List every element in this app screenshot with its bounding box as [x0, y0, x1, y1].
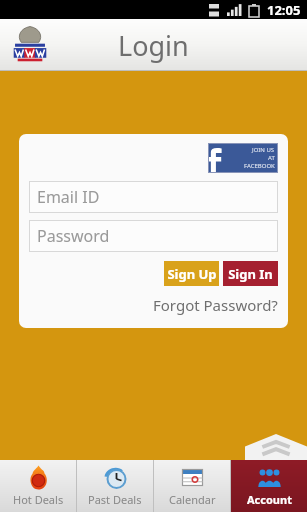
staticText: Email ID — [37, 186, 100, 208]
staticText: 12:05 — [267, 1, 301, 19]
staticText: Account — [247, 492, 292, 507]
staticText: Past Deals — [88, 492, 142, 507]
button[interactable]: Password — [29, 220, 278, 252]
button[interactable]: Hot Deals — [0, 460, 76, 512]
button[interactable]: Sign In — [223, 261, 278, 286]
staticText: Hot Deals — [13, 492, 64, 507]
staticText: Sign In — [228, 265, 273, 283]
button[interactable]: Join us at Facebook — [208, 143, 278, 173]
staticText: Password — [37, 225, 110, 247]
staticText: Forgot Password? — [153, 295, 278, 315]
button[interactable]: Email ID — [29, 181, 278, 213]
button[interactable]: Calendar — [154, 460, 230, 512]
staticText: FACEBOOK — [244, 162, 275, 170]
button[interactable]: Forgot Password? — [29, 295, 278, 315]
button[interactable]: Sign Up — [164, 261, 219, 286]
button[interactable]: Account — [231, 460, 307, 512]
staticText: Calendar — [169, 492, 216, 507]
staticText: AT — [268, 154, 275, 162]
staticText: Sign Up — [167, 265, 217, 283]
staticText: Login — [118, 27, 189, 64]
button[interactable]: Past Deals — [77, 460, 153, 512]
staticText: JOIN US — [252, 146, 275, 154]
